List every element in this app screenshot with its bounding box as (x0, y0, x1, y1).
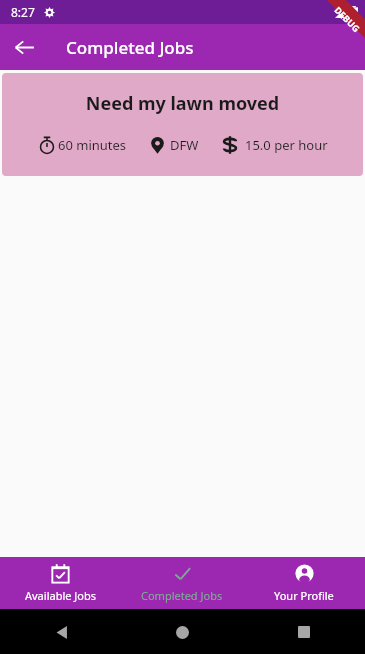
button[interactable]: Back (45, 616, 77, 648)
button[interactable]: Your Profile (243, 558, 365, 609)
button[interactable]: Back (6, 29, 42, 65)
staticText: 8:27 (11, 4, 35, 20)
staticText: Completed Jobs (141, 588, 223, 603)
button[interactable]: Recent apps (288, 616, 320, 648)
button[interactable]: Home (166, 616, 198, 648)
staticText: 60 minutes (58, 136, 127, 154)
staticText: Available Jobs (25, 588, 96, 603)
button[interactable]: Need my lawn moved (2, 73, 363, 176)
button[interactable]: Available Jobs (0, 558, 121, 609)
staticText: Completed Jobs (66, 36, 194, 59)
staticText: DEBUG (332, 4, 363, 34)
staticText: Your Profile (274, 588, 334, 603)
button[interactable]: Completed Jobs (121, 558, 243, 609)
staticText: Need my lawn moved (2, 91, 363, 116)
staticText: 15.0 per hour (245, 136, 328, 154)
staticText: DFW (170, 136, 199, 154)
